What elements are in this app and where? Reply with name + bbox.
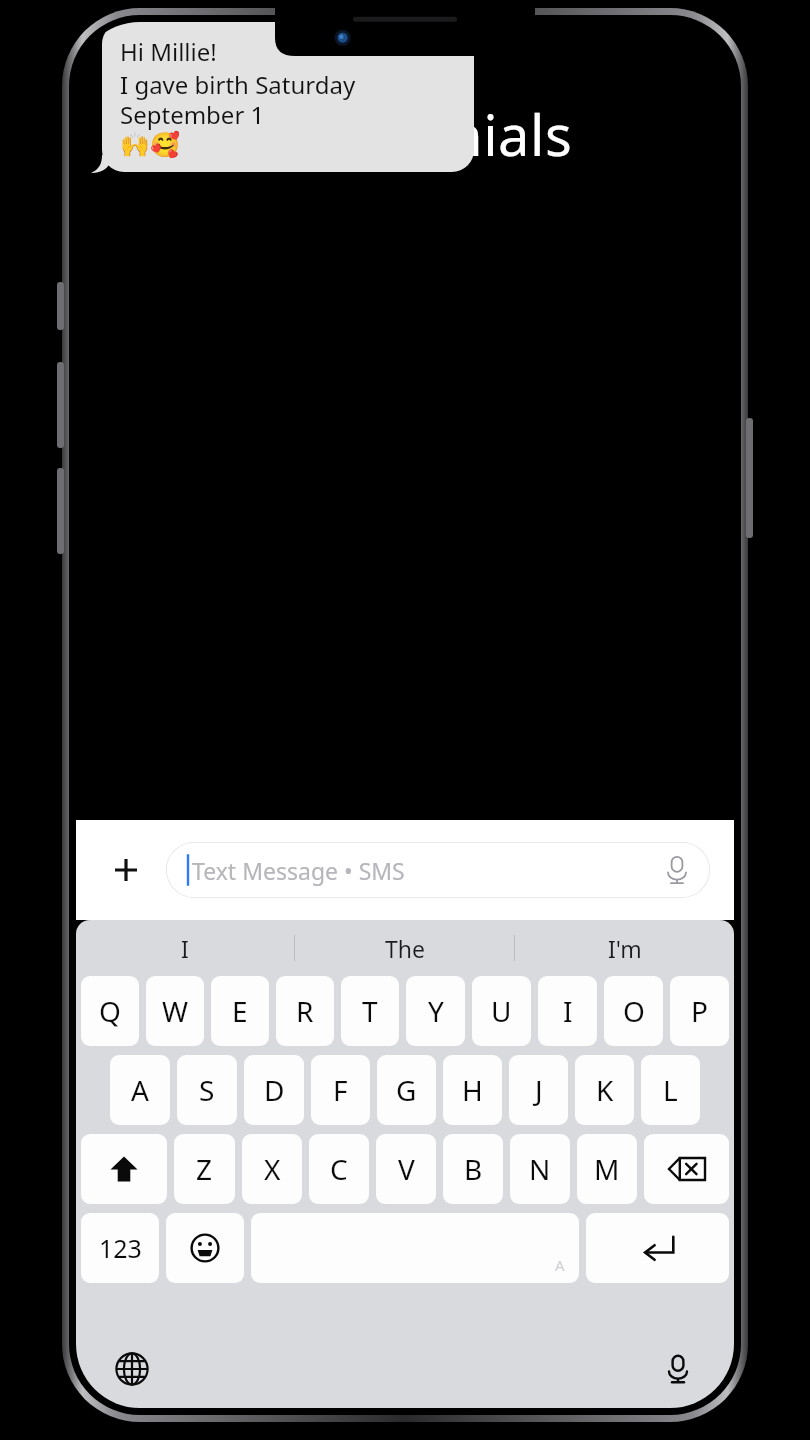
- staticText: E: [232, 992, 248, 1030]
- button[interactable]: Hi Millie!: [102, 22, 474, 172]
- staticText: O: [623, 992, 645, 1030]
- staticText: A: [555, 1255, 565, 1275]
- button[interactable]: Emoji: [166, 1213, 244, 1283]
- staticText: V: [398, 1150, 415, 1188]
- button[interactable]: Z: [174, 1134, 235, 1204]
- staticText: Hi Millie!: [120, 35, 217, 68]
- button[interactable]: X: [242, 1134, 302, 1204]
- button[interactable]: I'm: [515, 920, 734, 976]
- button[interactable]: G: [377, 1055, 436, 1125]
- button[interactable]: B: [443, 1134, 503, 1204]
- staticText: A: [131, 1071, 149, 1109]
- staticText: Testimonials: [238, 96, 573, 172]
- staticText: D: [264, 1071, 285, 1109]
- button[interactable]: Return: [586, 1213, 729, 1283]
- staticText: U: [491, 992, 512, 1030]
- button[interactable]: R: [276, 976, 334, 1046]
- button[interactable]: Shift: [81, 1134, 167, 1204]
- staticText: 123: [99, 1231, 142, 1265]
- button[interactable]: H: [443, 1055, 502, 1125]
- staticText: H: [462, 1071, 483, 1109]
- button[interactable]: F: [311, 1055, 370, 1125]
- button[interactable]: V: [376, 1134, 436, 1204]
- button[interactable]: I: [538, 976, 597, 1046]
- staticText: F: [333, 1071, 348, 1109]
- staticText: I gave birth Saturday September 1: [120, 68, 456, 131]
- button[interactable]: U: [472, 976, 531, 1046]
- staticText: P: [691, 992, 708, 1030]
- button[interactable]: P: [670, 976, 729, 1046]
- staticText: B: [464, 1150, 483, 1188]
- button[interactable]: N: [510, 1134, 570, 1204]
- staticText: C: [330, 1150, 348, 1188]
- button[interactable]: S: [177, 1055, 237, 1125]
- button[interactable]: Change keyboard: [110, 1347, 154, 1391]
- staticText: The: [385, 933, 425, 964]
- staticText: Q: [99, 992, 121, 1030]
- button[interactable]: K: [575, 1055, 634, 1125]
- button[interactable]: Dictate message: [662, 855, 692, 885]
- button[interactable]: The: [295, 920, 514, 976]
- staticText: G: [396, 1071, 417, 1109]
- staticText: I: [563, 992, 573, 1030]
- staticText: Z: [196, 1150, 213, 1188]
- button[interactable]: Numbers: [81, 1213, 159, 1283]
- button[interactable]: J: [509, 1055, 568, 1125]
- button[interactable]: Q: [81, 976, 139, 1046]
- staticText: N: [529, 1150, 551, 1188]
- staticText: Y: [428, 992, 444, 1030]
- button[interactable]: I: [76, 920, 294, 976]
- staticText: 🙌🥰: [120, 131, 180, 159]
- staticText: K: [596, 1071, 614, 1109]
- button[interactable]: E: [211, 976, 269, 1046]
- button[interactable]: T: [341, 976, 399, 1046]
- staticText: J: [535, 1071, 543, 1109]
- staticText: S: [199, 1071, 215, 1109]
- staticText: R: [296, 992, 314, 1030]
- button[interactable]: Delete: [644, 1134, 729, 1204]
- button[interactable]: O: [604, 976, 663, 1046]
- staticText: T: [362, 992, 378, 1030]
- staticText: W: [162, 992, 189, 1030]
- button[interactable]: Add attachment: [100, 844, 152, 896]
- staticText: Text Message • SMS: [192, 855, 405, 886]
- button[interactable]: C: [309, 1134, 369, 1204]
- staticText: X: [264, 1150, 281, 1188]
- button[interactable]: W: [146, 976, 204, 1046]
- button[interactable]: Dictation: [656, 1347, 700, 1391]
- staticText: I'm: [608, 933, 642, 964]
- staticText: I: [181, 933, 189, 964]
- button[interactable]: Y: [406, 976, 465, 1046]
- staticText: L: [663, 1071, 678, 1109]
- button[interactable]: A: [110, 1055, 170, 1125]
- button[interactable]: D: [244, 1055, 304, 1125]
- button[interactable]: M: [577, 1134, 637, 1204]
- staticText: M: [594, 1150, 620, 1188]
- button[interactable]: L: [641, 1055, 700, 1125]
- button[interactable]: Text Message • SMS: [166, 842, 710, 898]
